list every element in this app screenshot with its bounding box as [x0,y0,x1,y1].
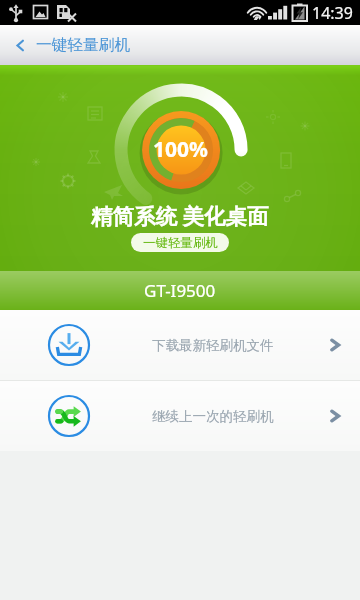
staticText: 一键轻量刷机 [143,235,218,251]
staticText: 继续上一次的轻刷机 [152,408,274,425]
staticText: 100% [153,135,208,164]
button[interactable]: 一键轻量刷机 [131,233,229,252]
staticText: 下载最新轻刷机文件 [152,337,274,354]
staticText: 14:39 [312,2,353,24]
staticText: GT-I9500 [144,279,216,302]
staticText: 一键轻量刷机 [36,35,131,55]
staticText: 精简系统 美化桌面 [91,201,269,230]
button[interactable]: 下载最新轻刷机文件 [0,310,360,380]
button[interactable]: 继续上一次的轻刷机 [0,381,360,451]
other: Back [13,38,28,53]
button[interactable]: Back [0,25,360,65]
